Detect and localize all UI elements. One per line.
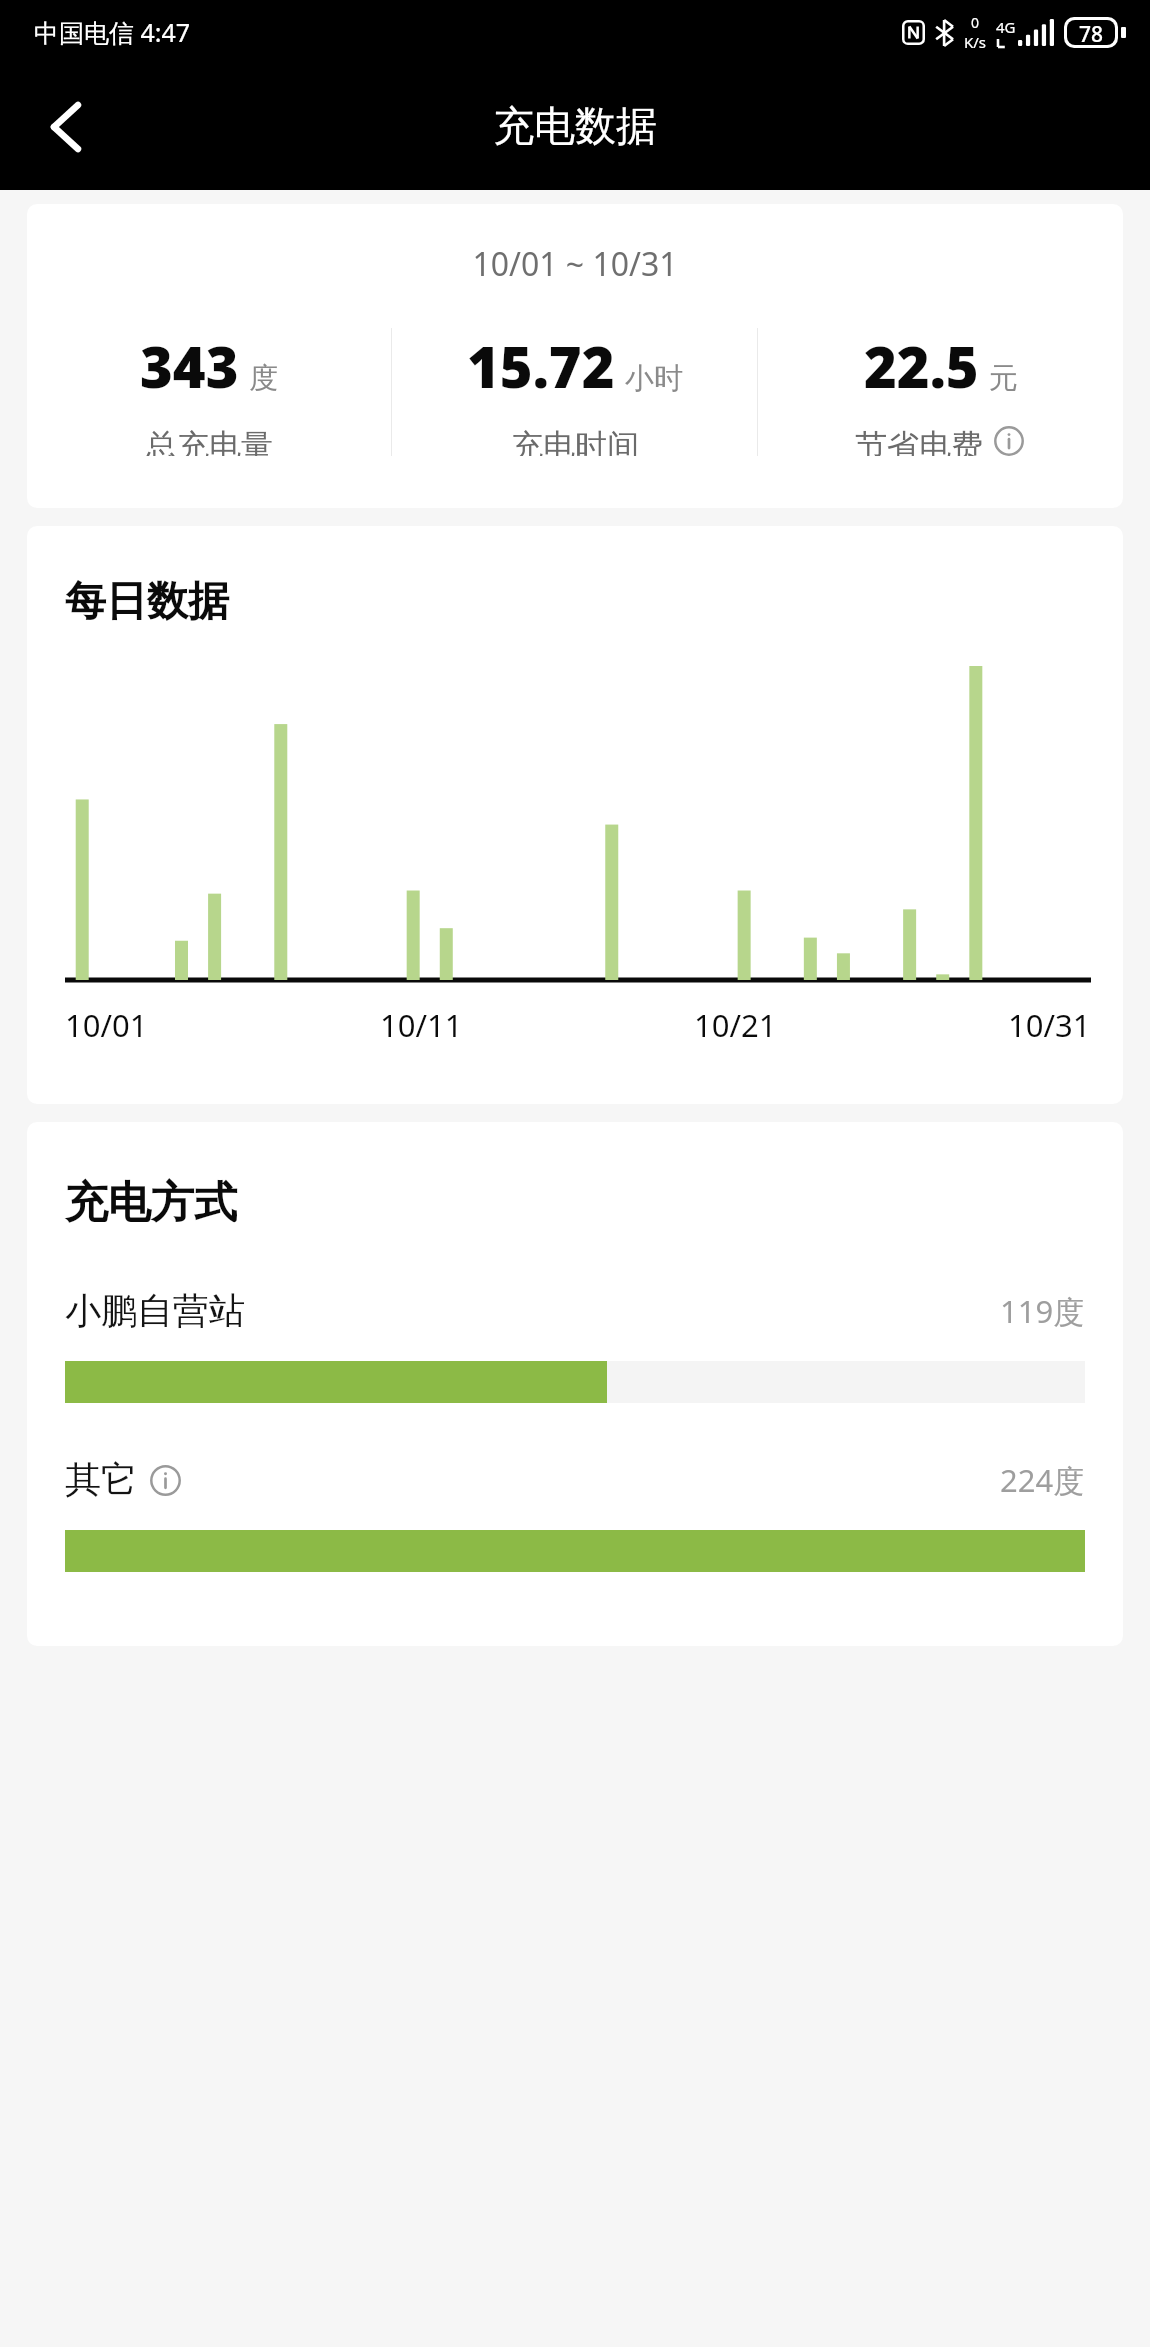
staticText: 中国电信 4:47 — [34, 15, 191, 49]
staticText: 其它 — [65, 1457, 137, 1502]
staticText: 小鹏自营站 — [65, 1288, 245, 1333]
staticText: 元 — [989, 360, 1018, 397]
staticText: 78 — [1079, 20, 1104, 45]
staticText: 小时 — [625, 360, 683, 397]
staticText: 10/01 — [65, 1004, 148, 1046]
staticText: 每日数据 — [65, 576, 229, 628]
staticText: 10/01 ~ 10/31 — [27, 242, 1123, 286]
staticText: 度 — [249, 360, 278, 397]
staticText: 15.72 — [467, 328, 615, 404]
staticText: 充电时间 — [511, 426, 639, 456]
staticText: 0 — [971, 13, 980, 32]
staticText: 充电数据 — [493, 101, 657, 153]
staticText: 充电方式 — [65, 1176, 237, 1230]
staticText: 224度 — [1000, 1459, 1085, 1501]
button[interactable]: 其它 — [65, 1457, 1085, 1572]
button[interactable]: 小鹏自营站 — [65, 1288, 1085, 1403]
button[interactable]: 说明 — [992, 426, 1026, 456]
staticText: 4G — [996, 17, 1016, 37]
button[interactable]: Back — [26, 87, 106, 167]
staticText: 总充电量 — [145, 426, 273, 456]
staticText: K/s — [964, 32, 987, 52]
staticText: 119度 — [1000, 1290, 1085, 1332]
staticText: 10/11 — [380, 1004, 463, 1046]
staticText: 343 — [140, 328, 239, 404]
staticText: 10/31 — [1008, 1004, 1091, 1046]
staticText: 节省电费 — [855, 426, 983, 456]
staticText: 22.5 — [864, 328, 979, 404]
staticText: 10/21 — [694, 1004, 777, 1046]
